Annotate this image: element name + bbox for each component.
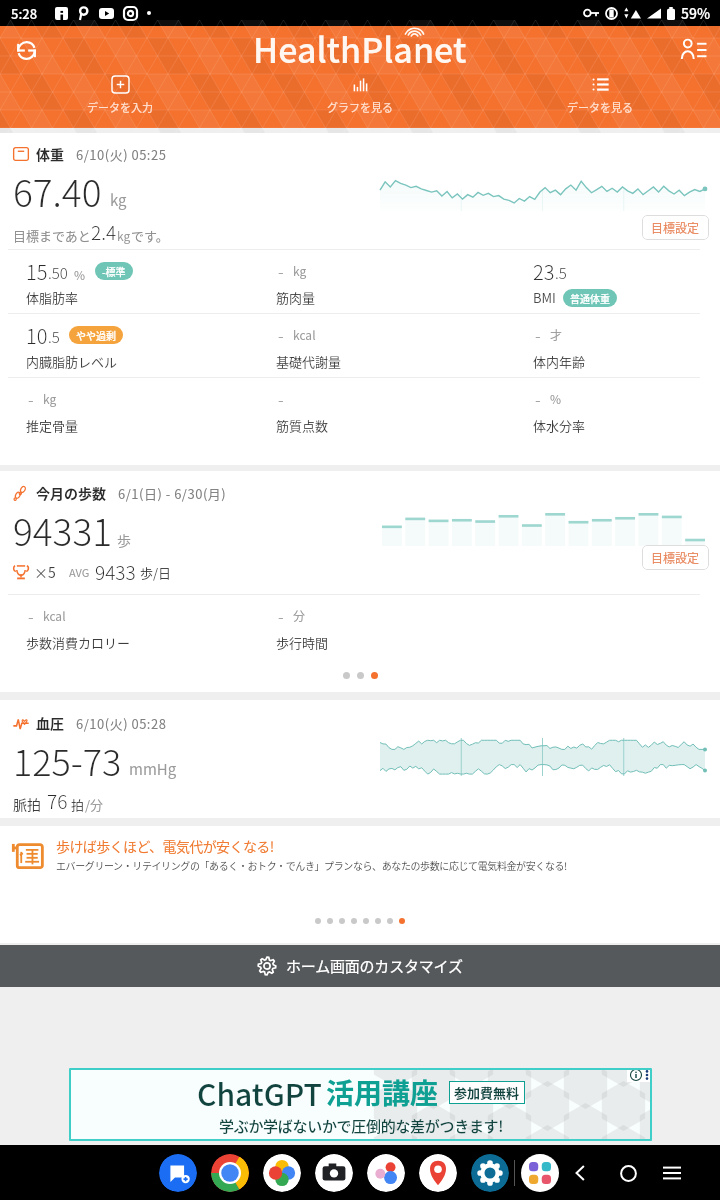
staticText: 参加費無料	[454, 1083, 520, 1102]
staticText: 6/10(火) 05:25	[76, 145, 167, 164]
button[interactable]: 10	[26, 314, 256, 377]
staticText: AVG	[69, 564, 90, 580]
staticText: 活用講座	[326, 1072, 439, 1113]
button[interactable]: Messages	[159, 1154, 197, 1192]
staticText: -	[278, 603, 284, 628]
button[interactable]: 目標設定	[642, 215, 709, 240]
staticText: BMI	[533, 288, 556, 307]
staticText: 筋質点数	[276, 416, 329, 435]
staticText: 筋肉量	[276, 288, 316, 307]
button[interactable]: Maps	[419, 1154, 457, 1192]
button[interactable]: -	[276, 378, 506, 441]
staticText: 76	[47, 787, 68, 815]
staticText: -	[535, 386, 541, 411]
staticText: -	[278, 258, 284, 283]
staticText: データを見る	[567, 99, 633, 115]
button[interactable]: データを見る	[480, 76, 720, 115]
staticText: 10	[26, 321, 48, 348]
button[interactable]: 23	[533, 250, 720, 313]
staticText: 歩けば歩くほど、電気代が安くなる!	[56, 836, 274, 856]
staticText: やや過剰	[76, 328, 116, 342]
staticText: -	[28, 603, 34, 628]
button[interactable]: Camera	[315, 1154, 353, 1192]
staticText: ChatGPT	[197, 1071, 322, 1114]
staticText: 歩/日	[140, 563, 172, 582]
staticText: エバーグリーン・リテイリングの「あるく・おトク・でんき」プランなら、あなたの歩数…	[56, 858, 567, 872]
button[interactable]: グラフを見る	[240, 76, 480, 115]
button[interactable]: -	[533, 378, 720, 441]
staticText: kg	[110, 189, 127, 211]
staticText: kg	[293, 262, 307, 279]
staticText: グラフを見る	[327, 99, 393, 115]
staticText: kcal	[43, 607, 66, 624]
button[interactable]: Gallery	[367, 1154, 405, 1192]
staticText: 125-73	[13, 734, 122, 786]
staticText: 才	[550, 326, 563, 343]
button[interactable]: Chrome	[211, 1154, 249, 1192]
button[interactable]: 目標設定	[642, 545, 709, 570]
staticText: 94331	[13, 503, 112, 557]
staticText: 目標設定	[651, 219, 700, 236]
staticText: 基礎代謝量	[276, 352, 342, 371]
button[interactable]: Photos	[263, 1154, 301, 1192]
staticText: ×5	[34, 562, 56, 582]
button[interactable]: -	[276, 250, 506, 313]
staticText: 2.4	[91, 218, 117, 246]
staticText: -	[278, 386, 284, 411]
staticText: -標準	[102, 264, 126, 278]
staticText: 9433	[95, 558, 136, 586]
staticText: 歩数消費カロリー	[26, 633, 131, 652]
staticText: -	[535, 322, 541, 347]
button[interactable]: Apps	[521, 1154, 559, 1192]
button[interactable]: Back	[566, 1158, 596, 1188]
staticText: 6/10(火) 05:28	[76, 714, 167, 733]
staticText: -	[28, 386, 34, 411]
staticText: 23	[533, 257, 555, 284]
staticText: HealthPlanet	[253, 24, 467, 73]
staticText: 歩	[117, 530, 131, 550]
staticText: mmHg	[129, 758, 177, 780]
staticText: 普通体重	[570, 291, 610, 305]
button[interactable]: Home	[613, 1158, 643, 1188]
button[interactable]: ホーム画面のカスタマイズ	[0, 945, 720, 987]
button[interactable]: -	[276, 314, 506, 377]
staticText: 分	[293, 607, 306, 624]
staticText: .5	[555, 262, 567, 284]
staticText: .50	[48, 262, 68, 284]
staticText: 目標まであと	[13, 226, 91, 245]
staticText: /分	[85, 795, 104, 814]
staticText: です。	[131, 226, 169, 245]
staticText: %	[550, 390, 562, 407]
staticText: 推定骨量	[26, 416, 79, 435]
button[interactable]: データを入力	[0, 76, 240, 115]
staticText: %	[74, 266, 86, 283]
button[interactable]: -	[26, 378, 256, 441]
staticText: 内臓脂肪レベル	[26, 352, 118, 371]
staticText: 血圧	[36, 713, 64, 733]
staticText: kg	[43, 390, 57, 407]
staticText: -	[278, 322, 284, 347]
button[interactable]: -	[533, 314, 720, 377]
button[interactable]: ChatGPT	[69, 1068, 652, 1141]
staticText: kg	[117, 227, 131, 244]
button[interactable]: Settings	[471, 1154, 509, 1192]
staticText: 目標設定	[651, 549, 700, 566]
staticText: 体脂肪率	[26, 288, 79, 307]
button[interactable]: 15	[26, 250, 256, 313]
button[interactable]: -	[26, 595, 256, 658]
staticText: 歩行時間	[276, 633, 329, 652]
button[interactable]: Profile	[672, 28, 716, 72]
staticText: 学ぶか学ばないかで圧倒的な差がつきます!	[219, 1115, 504, 1137]
button[interactable]: -	[276, 595, 506, 658]
staticText: 脈拍	[13, 794, 41, 814]
staticText: ホーム画面のカスタマイズ	[286, 955, 463, 977]
staticText: 59%	[681, 3, 711, 23]
staticText: 今月の歩数	[36, 483, 106, 503]
staticText: 拍	[71, 795, 85, 814]
staticText: kcal	[293, 326, 316, 343]
button[interactable]: 歩けば歩くほど、電気代が安くなる!	[0, 826, 720, 882]
button[interactable]: Refresh	[4, 28, 48, 72]
button[interactable]: Menu	[657, 1158, 687, 1188]
staticText: データを入力	[87, 99, 153, 115]
staticText: 6/1(日) - 6/30(月)	[118, 484, 227, 503]
